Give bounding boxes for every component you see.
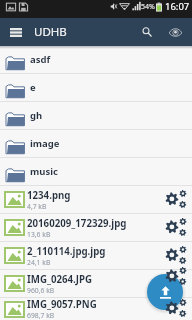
button[interactable]: Preview (165, 22, 185, 42)
staticText: 24,1 kB (27, 258, 51, 267)
button[interactable]: gh (0, 102, 192, 129)
staticText: 20160209_172329.jpg (27, 217, 127, 230)
staticText: 1234.png (27, 189, 71, 202)
staticText: e (30, 81, 36, 94)
staticText: 13,6 kB (27, 230, 51, 239)
staticText: 16:07 (165, 0, 190, 13)
button[interactable]: asdf (0, 46, 192, 73)
button[interactable]: Options (164, 242, 188, 266)
button[interactable]: 20160209_172329.jpg (0, 214, 192, 241)
button[interactable]: 1234.png (0, 186, 192, 213)
button[interactable]: Options (164, 186, 188, 210)
staticText: IMG_0264.JPG (27, 273, 93, 286)
button[interactable]: 2_110114.jpg.jpg (0, 242, 192, 269)
staticText: 4,7 kB (27, 202, 47, 211)
button[interactable]: Options (164, 270, 188, 294)
button[interactable]: Menu (7, 23, 25, 41)
staticText: 960,6 kB (27, 286, 55, 295)
button[interactable]: Search (137, 22, 157, 42)
staticText: asdf (30, 53, 51, 66)
button[interactable]: image (0, 130, 192, 157)
button[interactable]: e (0, 74, 192, 101)
button[interactable]: Options (164, 296, 188, 318)
button[interactable]: Upload (147, 274, 183, 310)
button[interactable]: IMG_0264.JPG (0, 270, 192, 297)
staticText: image (30, 137, 60, 150)
staticText: 698,7 kB (27, 311, 55, 320)
button[interactable]: Options (164, 214, 188, 238)
staticText: IMG_9057.PNG (27, 298, 97, 311)
staticText: gh (30, 109, 43, 122)
staticText: 2_110114.jpg.jpg (27, 245, 106, 258)
staticText: 54% (141, 2, 155, 12)
staticText: music (30, 165, 58, 178)
button[interactable]: IMG_9057.PNG (0, 298, 192, 320)
staticText: UDHB (34, 24, 67, 40)
button[interactable]: music (0, 158, 192, 185)
